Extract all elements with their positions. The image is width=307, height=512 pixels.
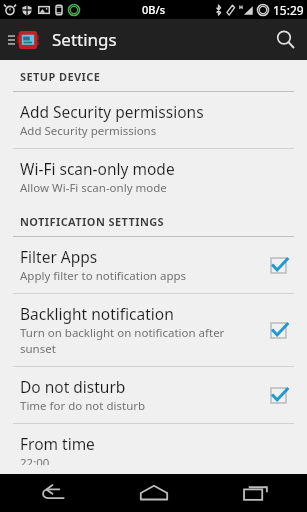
staticText: 0B/s bbox=[142, 2, 166, 17]
staticText: Filter Apps bbox=[20, 246, 98, 267]
staticText: NOTIFICATION SETTINGS bbox=[20, 214, 165, 229]
staticText: Backlight notification bbox=[20, 303, 174, 324]
staticText: Add Security permissions bbox=[20, 123, 157, 139]
button[interactable]: Toggle bbox=[263, 250, 293, 280]
button[interactable]: Backlight notification bbox=[0, 294, 307, 366]
staticText: Wi-Fi scan-only mode bbox=[20, 158, 175, 179]
button[interactable]: From time bbox=[0, 424, 307, 474]
button[interactable]: Wi-Fi scan-only mode bbox=[0, 149, 307, 205]
button[interactable]: Home bbox=[103, 474, 205, 512]
button[interactable]: Recent apps bbox=[205, 474, 307, 512]
button[interactable]: Toggle bbox=[263, 315, 293, 345]
staticText: Allow Wi-Fi scan-only mode bbox=[20, 180, 167, 196]
staticText: Add Security permissions bbox=[20, 101, 204, 122]
button[interactable]: Toggle bbox=[263, 380, 293, 410]
button[interactable]: Search bbox=[263, 19, 307, 60]
button[interactable]: Do not disturb bbox=[0, 367, 307, 423]
staticText: Apply filter to notification apps bbox=[20, 268, 187, 284]
staticText: SETUP DEVICE bbox=[20, 69, 101, 84]
staticText: Turn on backlight on notification after … bbox=[20, 325, 255, 357]
button[interactable]: Filter Apps bbox=[0, 237, 307, 293]
button[interactable]: Add Security permissions bbox=[0, 92, 307, 148]
staticText: 15:29 bbox=[273, 2, 304, 18]
staticText: Settings bbox=[52, 28, 117, 51]
button[interactable]: Back bbox=[0, 474, 103, 512]
staticText: Do not disturb bbox=[20, 376, 126, 397]
staticText: 22:00 bbox=[20, 455, 50, 465]
staticText: From time bbox=[20, 433, 95, 454]
button[interactable]: Navigate up bbox=[0, 19, 46, 60]
staticText: Time for do not disturb bbox=[20, 398, 146, 414]
